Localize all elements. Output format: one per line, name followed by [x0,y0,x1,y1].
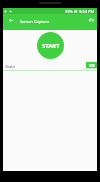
staticText: 9:34 PM [79,9,95,14]
button[interactable]: START [37,32,64,59]
button[interactable]: Camera [86,14,97,25]
staticText: START [42,42,60,50]
button[interactable]: Shake toggle [82,62,97,69]
staticText: Shake [5,64,16,69]
button[interactable]: Back [5,14,17,26]
staticText: Screen Capture [20,19,50,24]
staticText: ON [89,63,95,68]
staticText: 39% [65,9,73,14]
button[interactable]: Shake [3,61,97,70]
